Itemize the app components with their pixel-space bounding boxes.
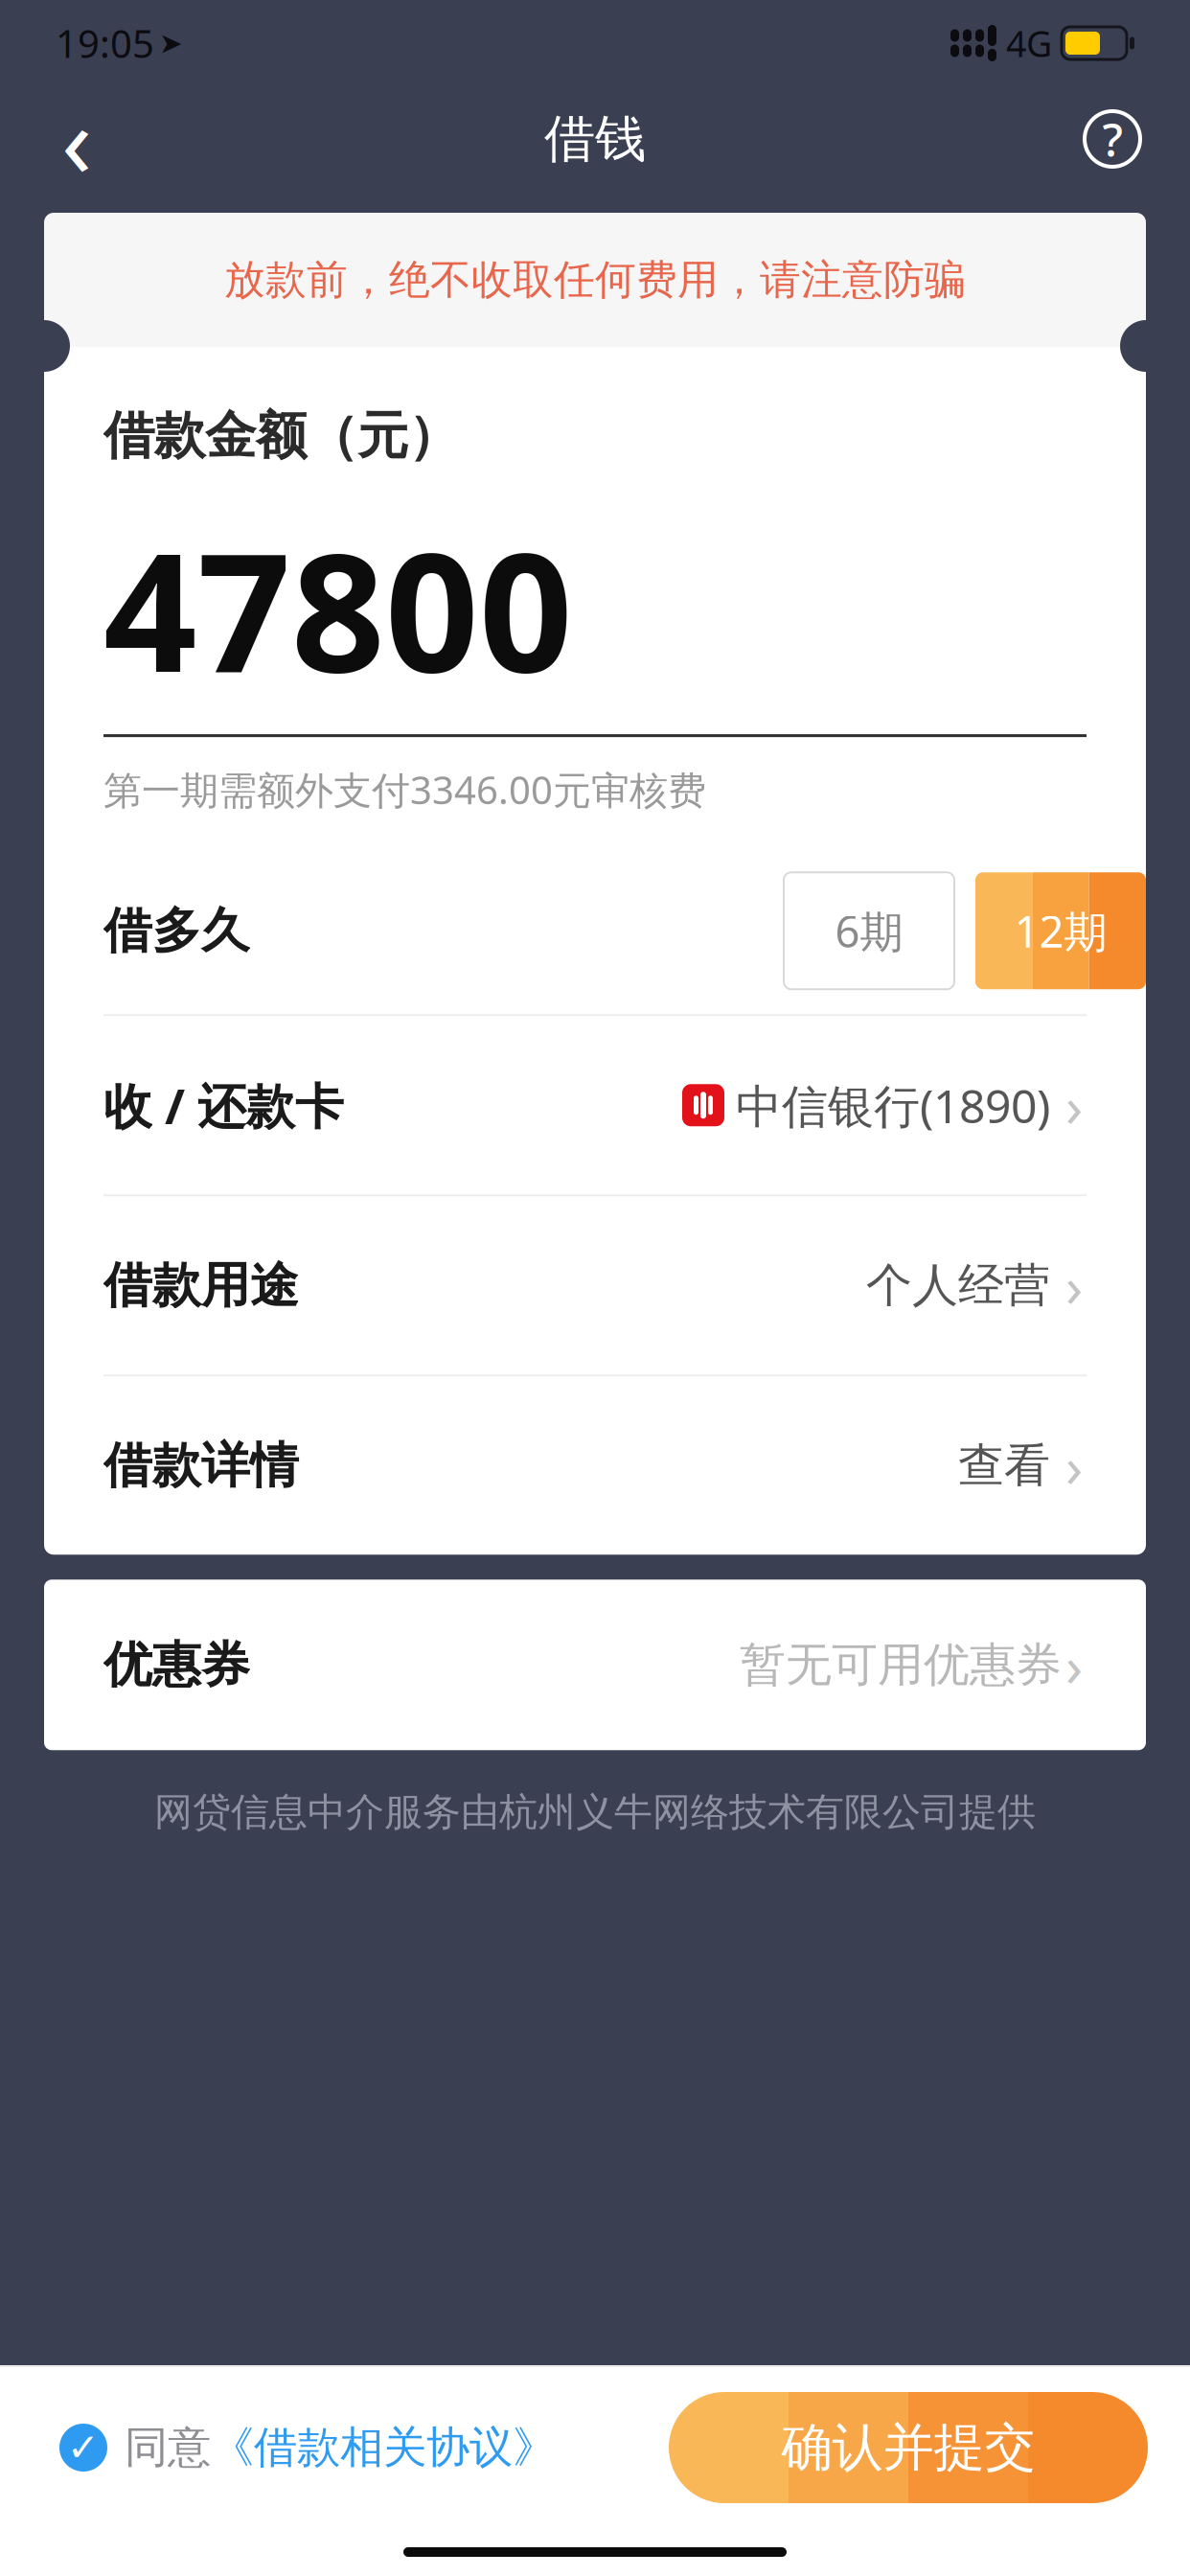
staticText: 借款用途 <box>103 1256 299 1315</box>
staticText: › <box>1065 1068 1083 1143</box>
staticText: 《借款相关协议》 <box>211 2421 556 2474</box>
staticText: › <box>1065 1628 1083 1702</box>
button[interactable]: 收 / 还款卡 <box>44 1016 1146 1194</box>
staticText: 同意 <box>125 2421 211 2474</box>
button[interactable]: 《借款相关协议》 <box>211 2402 556 2493</box>
staticText: › <box>1065 1248 1083 1323</box>
staticText: 12期 <box>1014 902 1107 960</box>
staticText: 放款前，绝不收取任何费用，请注意防骗 <box>224 255 966 305</box>
button[interactable]: 返回 <box>0 87 111 191</box>
button[interactable]: 借款用途 <box>44 1196 1146 1375</box>
button[interactable]: 12期 <box>975 872 1146 989</box>
staticText: 网贷信息中介服务由杭州义牛网络技术有限公司提供 <box>154 1789 1036 1836</box>
staticText: 借款金额（元） <box>103 404 459 467</box>
button[interactable]: ✓ <box>0 2402 211 2493</box>
staticText: 暂无可用优惠券 <box>740 1637 1062 1693</box>
staticText: 确认并提交 <box>781 2416 1035 2479</box>
staticText: 6期 <box>835 902 903 960</box>
staticText: 优惠券 <box>103 1635 250 1695</box>
staticText: ? <box>1102 108 1122 169</box>
staticText: ➤ <box>159 27 183 59</box>
staticText: 借多久 <box>103 901 250 961</box>
staticText: ✓ <box>67 2426 100 2469</box>
button[interactable]: 借款详情 <box>44 1376 1146 1555</box>
button[interactable]: 6期 <box>784 872 954 989</box>
staticText: 47800 <box>103 500 573 717</box>
button[interactable]: 帮助 <box>1085 98 1190 180</box>
staticText: 个人经营 <box>866 1257 1050 1314</box>
button[interactable]: 确认并提交 <box>669 2392 1190 2503</box>
staticText: 4G <box>1006 19 1052 67</box>
button[interactable]: 优惠券 <box>0 1555 1190 1750</box>
staticText: 查看 <box>958 1437 1050 1494</box>
staticText: › <box>1065 1428 1083 1503</box>
staticText: 借钱 <box>544 108 646 170</box>
staticText: 收 / 还款卡 <box>103 1073 344 1137</box>
staticText: 借款详情 <box>103 1436 299 1495</box>
staticText: ‹ <box>61 73 92 205</box>
staticText: 中信银行(1890) <box>736 1075 1050 1136</box>
staticText: 19:05 <box>56 18 154 69</box>
staticText: 第一期需额外支付3346.00元审核费 <box>103 764 706 815</box>
